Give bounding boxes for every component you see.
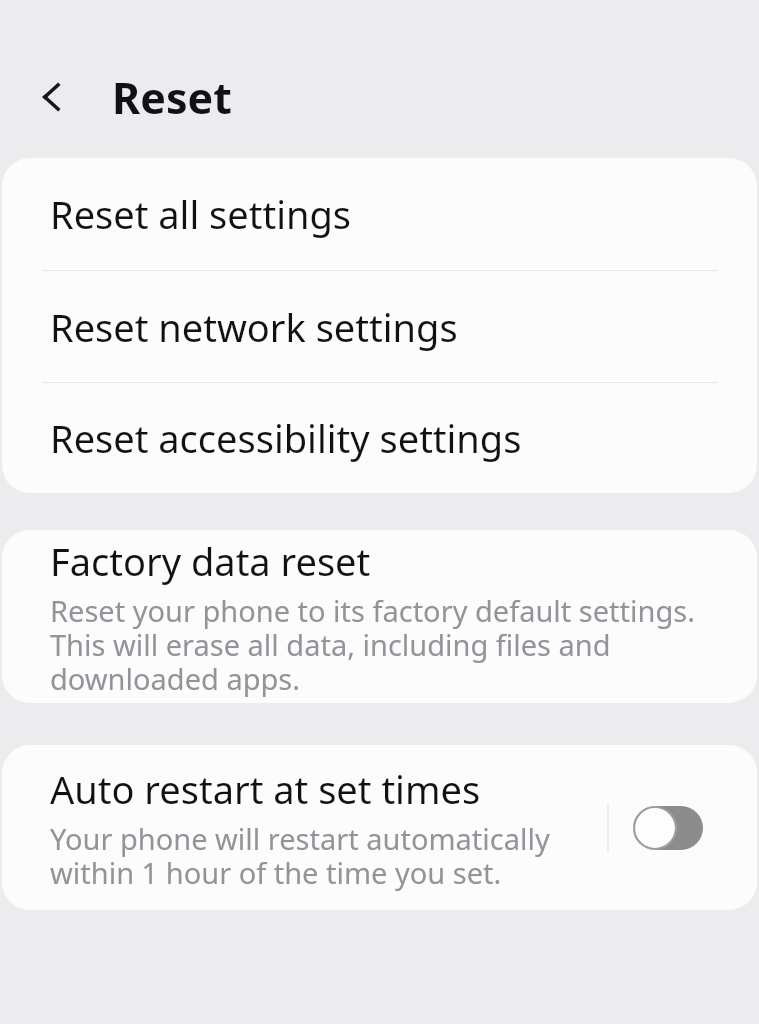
button[interactable]: Auto restart at set times: [2, 745, 757, 910]
staticText: Reset accessibility settings: [50, 412, 522, 464]
button[interactable]: Back: [28, 73, 76, 121]
staticText: Auto restart at set times: [50, 763, 481, 815]
staticText: Reset network settings: [50, 301, 458, 353]
staticText: Reset all settings: [50, 188, 352, 240]
staticText: Reset your phone to its factory default …: [50, 591, 713, 698]
button[interactable]: Reset network settings: [2, 271, 757, 382]
staticText: Reset: [112, 68, 232, 127]
button[interactable]: Reset all settings: [2, 158, 757, 270]
staticText: Factory data reset: [50, 535, 371, 587]
button[interactable]: Auto restart toggle: [633, 806, 703, 850]
button[interactable]: Factory data reset: [2, 530, 757, 703]
staticText: Your phone will restart automatically wi…: [50, 819, 599, 892]
button[interactable]: Reset accessibility settings: [2, 383, 757, 493]
